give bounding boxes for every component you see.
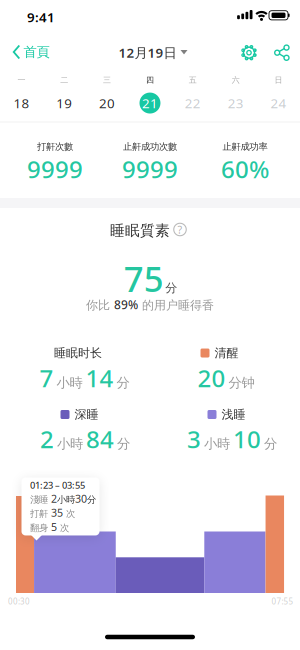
staticText: 9999 xyxy=(27,153,83,185)
staticText: 12月19日 xyxy=(118,44,176,61)
staticText: 睡眠質素 xyxy=(110,221,170,239)
staticText: 10 xyxy=(233,423,261,455)
staticText: 7 xyxy=(39,362,53,394)
staticText: 打鼾次數 xyxy=(37,141,73,152)
staticText: 次 xyxy=(57,522,69,534)
staticText: 你比 xyxy=(86,298,114,312)
staticText: 9999 xyxy=(122,153,178,185)
button[interactable]: Settings xyxy=(240,44,257,61)
button[interactable]: 一 xyxy=(10,74,32,113)
staticText: 分钟 xyxy=(228,375,254,391)
staticText: 深睡 xyxy=(74,407,98,422)
staticText: 21 xyxy=(142,94,158,112)
button[interactable]: 12月19日 xyxy=(118,44,187,61)
staticText: ? xyxy=(177,222,182,237)
staticText: 18 xyxy=(13,94,29,112)
staticText: 小時 xyxy=(57,494,75,505)
button[interactable]: 三 xyxy=(96,74,118,113)
staticText: 23 xyxy=(228,94,244,112)
staticText: 60% xyxy=(221,153,269,185)
staticText: 小時 xyxy=(57,436,83,452)
staticText: 四 xyxy=(146,75,154,85)
staticText: 89% xyxy=(114,296,138,312)
staticText: 14 xyxy=(85,362,113,394)
button[interactable]: 首頁 xyxy=(12,44,49,60)
staticText: 75 xyxy=(124,255,164,301)
staticText: 止鼾成功率 xyxy=(222,141,267,152)
staticText: 35 xyxy=(51,506,63,520)
staticText: 5 xyxy=(51,520,57,534)
staticText: 止鼾成功次數 xyxy=(123,141,177,152)
staticText: 01:23 – 03:55 xyxy=(30,479,85,491)
staticText: 24 xyxy=(271,94,287,112)
staticText: 打鼾 xyxy=(30,508,51,519)
staticText: 首頁 xyxy=(23,44,49,60)
staticText: 的用户睡得香 xyxy=(138,298,214,312)
staticText: 19 xyxy=(56,94,72,112)
button[interactable]: 五 xyxy=(182,74,204,113)
staticText: 日 xyxy=(275,75,283,85)
button[interactable]: 二 xyxy=(53,74,75,113)
button[interactable]: Share xyxy=(274,45,290,61)
staticText: 22 xyxy=(185,94,201,112)
staticText: 二 xyxy=(60,75,68,85)
staticText: 淺睡 xyxy=(30,494,51,505)
button[interactable]: 日 xyxy=(268,74,290,113)
button[interactable]: 四 xyxy=(139,74,161,113)
staticText: 睡眠时长 xyxy=(54,346,102,360)
staticText: 3 xyxy=(187,423,201,455)
button[interactable]: 六 xyxy=(225,74,247,113)
staticText: 分 xyxy=(165,281,177,295)
staticText: 00:30 xyxy=(8,596,30,607)
staticText: 07:55 xyxy=(271,596,293,607)
staticText: 分 xyxy=(117,436,130,452)
staticText: 30 xyxy=(75,491,87,506)
staticText: 84 xyxy=(86,423,114,455)
staticText: 次 xyxy=(63,508,75,519)
staticText: 2 xyxy=(51,491,57,506)
staticText: 三 xyxy=(103,75,111,85)
button[interactable]: About sleep quality xyxy=(173,223,186,236)
staticText: 六 xyxy=(232,75,240,85)
staticText: 2 xyxy=(40,423,54,455)
staticText: 小時 xyxy=(56,375,82,391)
staticText: 翻身 xyxy=(30,522,51,534)
staticText: 分 xyxy=(116,375,129,391)
staticText: 清醒 xyxy=(214,346,238,360)
staticText: 20 xyxy=(99,94,115,112)
staticText: 20 xyxy=(197,362,225,394)
staticText: 五 xyxy=(189,75,197,85)
staticText: 小時 xyxy=(204,436,230,452)
staticText: 9:41 xyxy=(27,8,55,26)
staticText: 分 xyxy=(264,436,277,452)
staticText: 浅睡 xyxy=(221,407,245,422)
staticText: 分 xyxy=(87,494,96,505)
staticText: 一 xyxy=(17,75,25,85)
